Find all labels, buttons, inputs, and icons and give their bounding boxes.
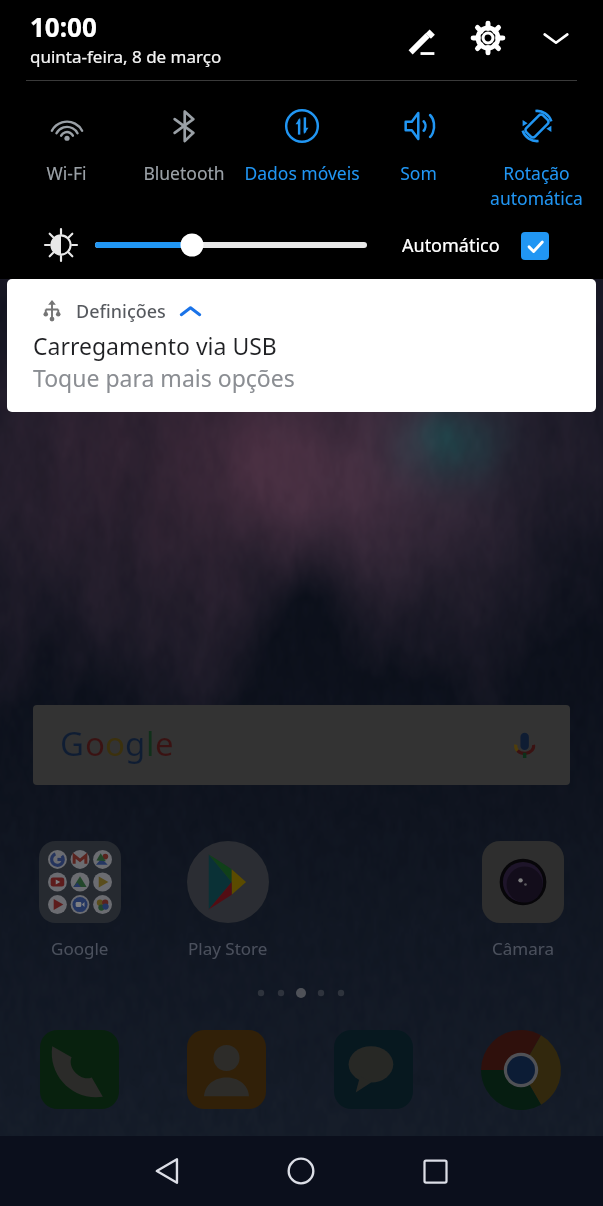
button[interactable]: G xyxy=(33,705,570,785)
staticText: e xyxy=(155,721,174,766)
button[interactable]: Back xyxy=(144,1147,192,1195)
button[interactable]: Home xyxy=(277,1147,325,1195)
staticText: 10:00 xyxy=(30,9,97,44)
staticText: G xyxy=(60,721,85,766)
button[interactable]: Phone xyxy=(40,1030,119,1109)
button[interactable]: Play Store xyxy=(186,841,270,960)
button[interactable]: Chrome xyxy=(481,1030,561,1110)
staticText: Definições xyxy=(76,299,166,324)
staticText: quinta-feira, 8 de março xyxy=(30,45,222,68)
button[interactable]: Rotação automática xyxy=(476,108,597,210)
staticText: Google xyxy=(51,937,109,960)
staticText: o xyxy=(105,721,125,766)
staticText: l xyxy=(146,721,155,766)
staticText: Toque para mais opções xyxy=(33,362,295,393)
staticText: Dados móveis xyxy=(244,161,360,185)
staticText: Rotação automática xyxy=(490,161,583,210)
button[interactable]: Câmara xyxy=(481,841,565,960)
other: Voice search xyxy=(506,725,546,765)
button[interactable]: Contacts xyxy=(187,1030,266,1109)
staticText: Automático xyxy=(402,233,500,258)
button[interactable]: Automatic brightness xyxy=(521,232,549,260)
button[interactable]: Edit xyxy=(398,16,446,64)
staticText: Carregamento via USB xyxy=(33,330,277,361)
staticText: Som xyxy=(400,161,437,185)
staticText: o xyxy=(85,721,105,766)
button[interactable]: Bluetooth xyxy=(123,108,244,185)
button[interactable]: Recent apps xyxy=(411,1147,459,1195)
staticText: g xyxy=(125,721,146,766)
button[interactable]: Som xyxy=(358,108,479,185)
button[interactable]: Wi-Fi xyxy=(6,108,127,185)
button[interactable]: Settings xyxy=(464,14,512,62)
button[interactable]: Expand xyxy=(532,14,580,62)
button[interactable]: Definições xyxy=(7,279,596,412)
button[interactable]: Google xyxy=(38,841,122,960)
staticText: Câmara xyxy=(492,937,554,960)
button[interactable]: Dados móveis xyxy=(241,108,362,185)
staticText: Bluetooth xyxy=(143,161,225,185)
button[interactable]: Messages xyxy=(334,1030,413,1109)
staticText: Wi-Fi xyxy=(46,161,87,185)
staticText: Play Store xyxy=(188,937,268,960)
